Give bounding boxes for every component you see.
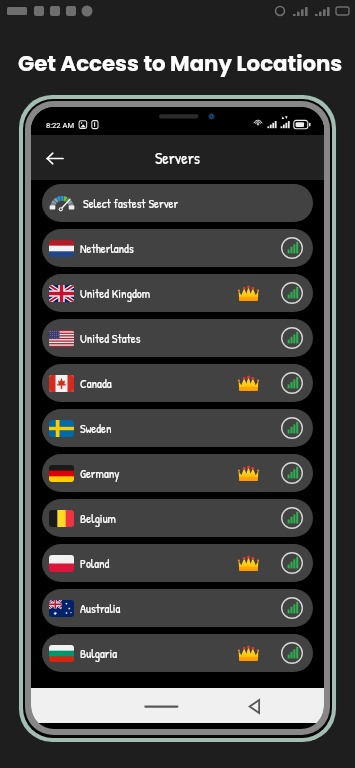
- staticText: Bulgaria: [80, 645, 118, 662]
- button[interactable]: Sweden: [42, 409, 313, 447]
- staticText: Belgium: [80, 510, 116, 527]
- staticText: Select fastest Server: [83, 195, 179, 212]
- staticText: Germany: [80, 465, 120, 482]
- button[interactable]: Australia: [42, 589, 313, 627]
- button[interactable]: Back: [38, 142, 70, 174]
- button[interactable]: Poland: [42, 544, 313, 582]
- button[interactable]: United States: [42, 319, 313, 357]
- button[interactable]: Belgium: [42, 499, 313, 537]
- staticText: Australia: [80, 600, 121, 617]
- staticText: United States: [80, 330, 141, 347]
- button[interactable]: Netherlands: [42, 229, 313, 267]
- staticText: Netherlands: [80, 240, 134, 257]
- button[interactable]: United Kingdom: [42, 274, 313, 312]
- staticText: United Kingdom: [80, 285, 151, 302]
- staticText: Canada: [80, 375, 112, 392]
- button[interactable]: Select fastest Server: [42, 184, 313, 222]
- staticText: Poland: [80, 555, 110, 572]
- button[interactable]: Canada: [42, 364, 313, 402]
- staticText: Get Access to Many Locations: [18, 49, 343, 79]
- button[interactable]: Bulgaria: [42, 634, 313, 672]
- button[interactable]: Germany: [42, 454, 313, 492]
- staticText: Sweden: [80, 420, 112, 437]
- staticText: 8:22 AM: [46, 121, 75, 130]
- staticText: Servers: [155, 147, 200, 169]
